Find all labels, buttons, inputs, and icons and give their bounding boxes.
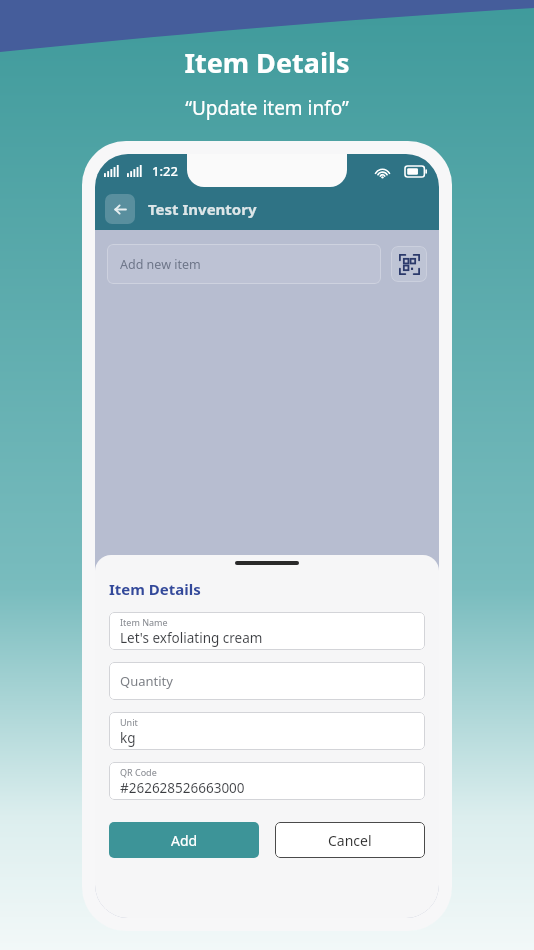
staticText: Let's exfoliating cream [120,629,263,647]
staticText: QR Code [120,766,157,778]
staticText: Unit [120,716,138,728]
staticText: Item Name [120,616,168,628]
staticText: “Update item info” [185,95,349,121]
button[interactable]: Scan QR code [391,246,427,282]
button[interactable]: Quantity [109,662,425,700]
staticText: kg [120,729,136,747]
staticText: Quantity [120,672,173,690]
button[interactable]: Cancel [275,822,425,858]
staticText: Item Details [109,579,201,599]
staticText: Cancel [328,831,372,850]
staticText: #262628526663000 [120,779,245,797]
button[interactable]: QR Code [109,762,425,800]
button[interactable]: Add [109,822,259,858]
staticText: Item Details [184,44,350,81]
button[interactable]: Back [105,194,135,224]
staticText: 1:22 [152,162,178,180]
staticText: Add new item [120,256,201,273]
button[interactable]: Add new item [107,244,381,284]
staticText: Test Inventory [148,199,257,219]
button[interactable]: Unit [109,712,425,750]
staticText: Add [171,831,198,850]
button[interactable]: Item Name [109,612,425,650]
